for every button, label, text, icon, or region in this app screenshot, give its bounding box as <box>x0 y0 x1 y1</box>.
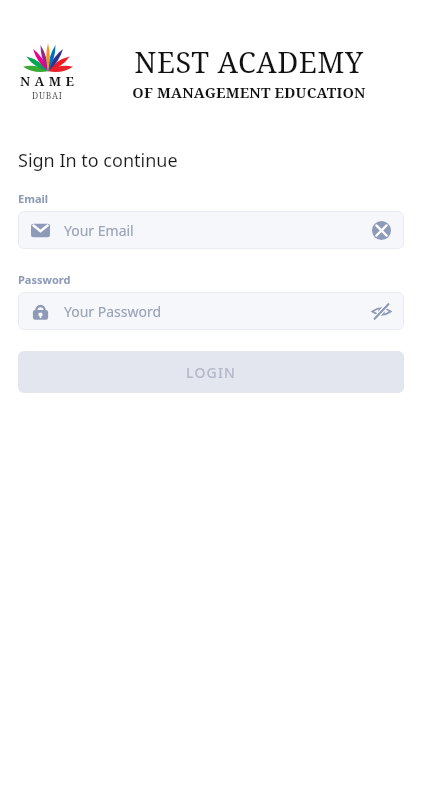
staticText: Your Email <box>64 221 370 240</box>
staticText: LOGIN <box>186 363 237 382</box>
staticText: Password <box>18 272 71 287</box>
button[interactable]: Clear email <box>370 219 392 241</box>
button[interactable]: LOGIN <box>18 351 404 393</box>
staticText: Email <box>18 191 49 206</box>
button[interactable]: Your Email <box>18 211 404 249</box>
staticText: OF MANAGEMENT EDUCATION <box>132 82 366 102</box>
staticText: Your Password <box>64 302 370 321</box>
staticText: N A M E <box>20 72 75 90</box>
staticText: NEST ACADEMY <box>134 42 364 81</box>
button[interactable]: Your Password <box>18 292 404 330</box>
staticText: DUBAI <box>32 90 63 102</box>
staticText: Sign In to continue <box>18 148 178 173</box>
button[interactable]: Show password <box>370 300 392 322</box>
